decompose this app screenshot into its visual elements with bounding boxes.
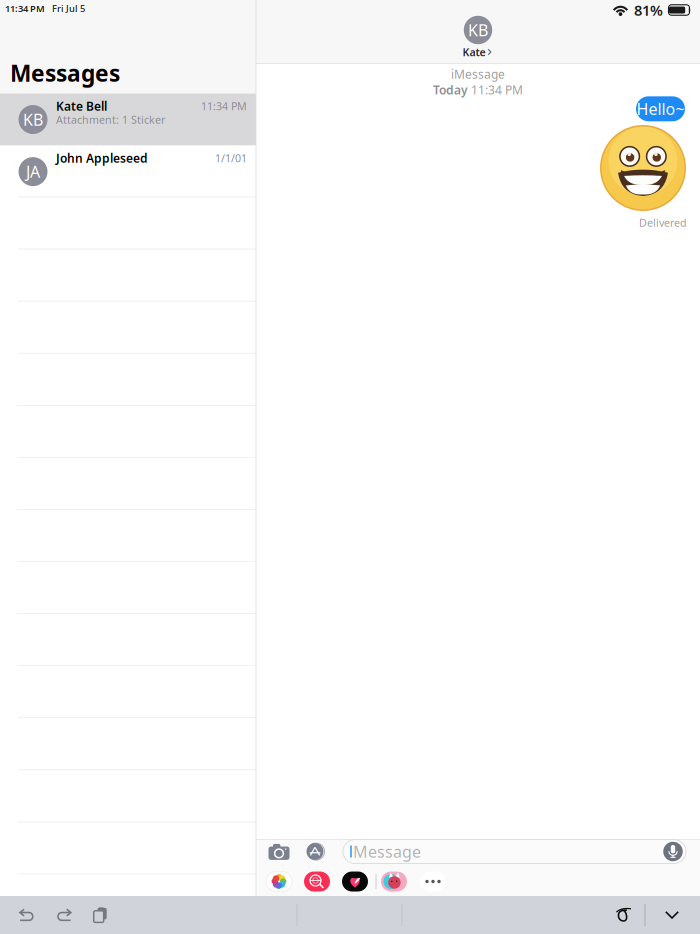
button[interactable]: Camera bbox=[266, 840, 292, 862]
staticText: Today bbox=[433, 82, 468, 98]
staticText: Attachment: 1 Sticker bbox=[56, 112, 165, 127]
staticText: Fri Jul 5 bbox=[52, 2, 85, 15]
staticText: Delivered bbox=[639, 215, 687, 230]
staticText: Messages bbox=[10, 58, 120, 88]
staticText: KB bbox=[468, 19, 488, 41]
staticText: 11:34 PM bbox=[201, 99, 247, 113]
button[interactable]: Kate bbox=[460, 46, 494, 58]
button[interactable]: Paste bbox=[85, 901, 115, 929]
staticText: KB bbox=[23, 109, 43, 130]
button[interactable]: Digital Touch bbox=[342, 871, 368, 891]
staticText: Kate Bell bbox=[56, 98, 107, 114]
staticText: 81% bbox=[634, 0, 663, 20]
button[interactable]: Memoji bbox=[381, 871, 407, 891]
button[interactable]: Undo bbox=[12, 901, 42, 929]
button[interactable]: Handwriting bbox=[606, 900, 640, 928]
button[interactable]: Photos bbox=[266, 871, 292, 891]
staticText: Message bbox=[353, 841, 421, 862]
button[interactable]: Hide keyboard bbox=[652, 901, 692, 929]
button[interactable]: Dictate bbox=[663, 842, 683, 861]
staticText: 1/1/01 bbox=[215, 151, 247, 165]
button[interactable]: Hello~ bbox=[636, 96, 685, 121]
button[interactable]: More apps bbox=[420, 871, 446, 891]
button[interactable]: KB bbox=[0, 93, 256, 146]
staticText: iMessage bbox=[451, 66, 505, 82]
staticText: JA bbox=[26, 161, 40, 182]
button[interactable]: Redo bbox=[49, 901, 79, 929]
staticText: 11:34 PM bbox=[471, 82, 523, 98]
staticText: 11:34 PM bbox=[5, 2, 45, 15]
staticText: Kate bbox=[462, 45, 485, 59]
button[interactable]: Images bbox=[304, 871, 330, 891]
staticText: Hello~ bbox=[636, 98, 684, 119]
button[interactable]: JA bbox=[0, 146, 256, 198]
button[interactable]: App Store bbox=[304, 840, 326, 862]
staticText: John Appleseed bbox=[56, 150, 148, 166]
